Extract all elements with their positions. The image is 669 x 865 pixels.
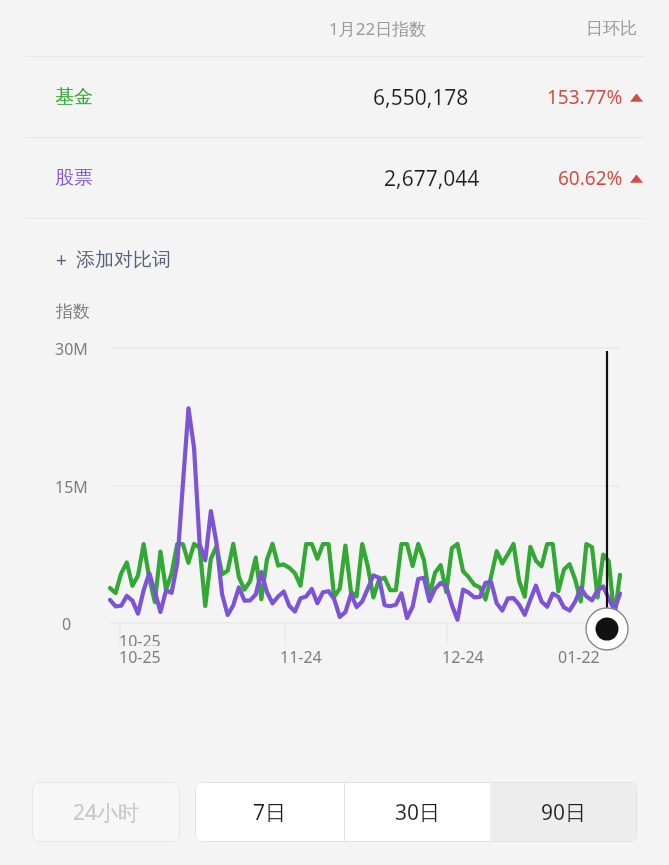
staticText: 基金 (55, 85, 93, 109)
staticText: 15M (55, 476, 88, 498)
button[interactable]: 90日 (490, 782, 637, 842)
staticText: 10-25 (119, 646, 161, 668)
staticText: 日环比 (586, 18, 637, 39)
staticText: 指数 (56, 301, 90, 322)
staticText: 12-24 (442, 646, 484, 668)
staticText: 60.62% (558, 165, 623, 191)
staticText: 2,677,044 (384, 164, 480, 193)
staticText: 6,550,178 (373, 83, 469, 112)
staticText: 153.77% (547, 84, 623, 110)
staticText: + (56, 247, 67, 273)
staticText: 24小时 (73, 798, 140, 827)
staticText: 添加对比词 (76, 248, 171, 272)
staticText: 7日 (253, 798, 287, 827)
staticText: 股票 (55, 166, 93, 190)
button[interactable]: 7日 (195, 782, 344, 842)
button[interactable]: + (50, 241, 177, 279)
staticText: 01-22 (558, 646, 600, 668)
staticText: 11-24 (280, 646, 322, 668)
button[interactable]: 30日 (345, 782, 490, 842)
button[interactable]: 24小时 (32, 782, 180, 842)
staticText: 0 (62, 613, 72, 635)
button[interactable]: 基金 (0, 57, 669, 137)
staticText: 30日 (395, 798, 441, 827)
button[interactable]: 股票 (0, 138, 669, 218)
staticText: 30M (55, 338, 88, 360)
staticText: 90日 (541, 798, 587, 827)
staticText: 10-25 (119, 630, 161, 646)
staticText: 1月22日指数 (329, 17, 427, 40)
